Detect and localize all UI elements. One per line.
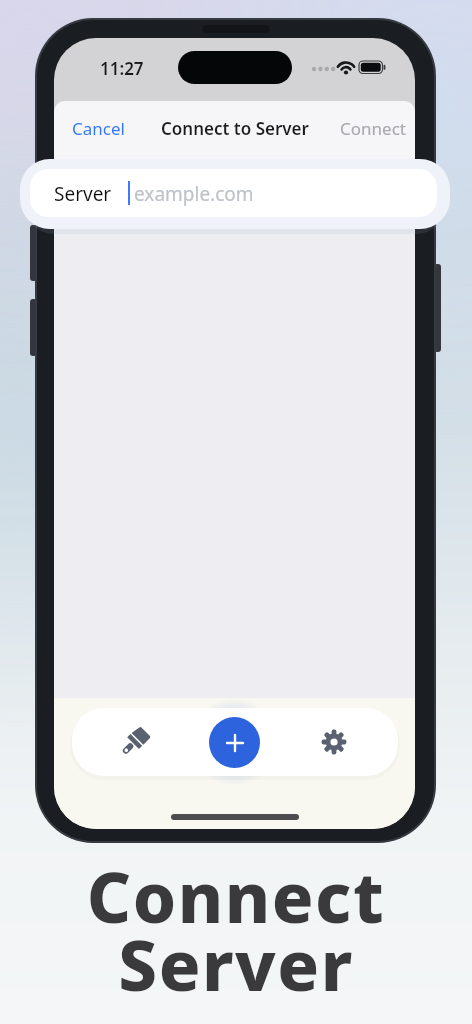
button[interactable] — [316, 724, 352, 760]
staticText: Server — [0, 917, 472, 1011]
button[interactable]: Connect — [337, 110, 409, 146]
button[interactable]: Cancel — [62, 110, 134, 146]
staticText: Cancel — [72, 117, 125, 140]
staticText: 11:27 — [100, 57, 144, 80]
staticText: example.com — [134, 181, 254, 207]
button[interactable] — [117, 724, 153, 760]
button[interactable]: Server — [20, 159, 450, 229]
staticText: Connect — [340, 117, 406, 140]
staticText: Connect — [0, 849, 472, 943]
button[interactable] — [209, 717, 260, 768]
staticText: Connect to Server — [161, 117, 309, 140]
staticText: Server — [54, 181, 112, 207]
